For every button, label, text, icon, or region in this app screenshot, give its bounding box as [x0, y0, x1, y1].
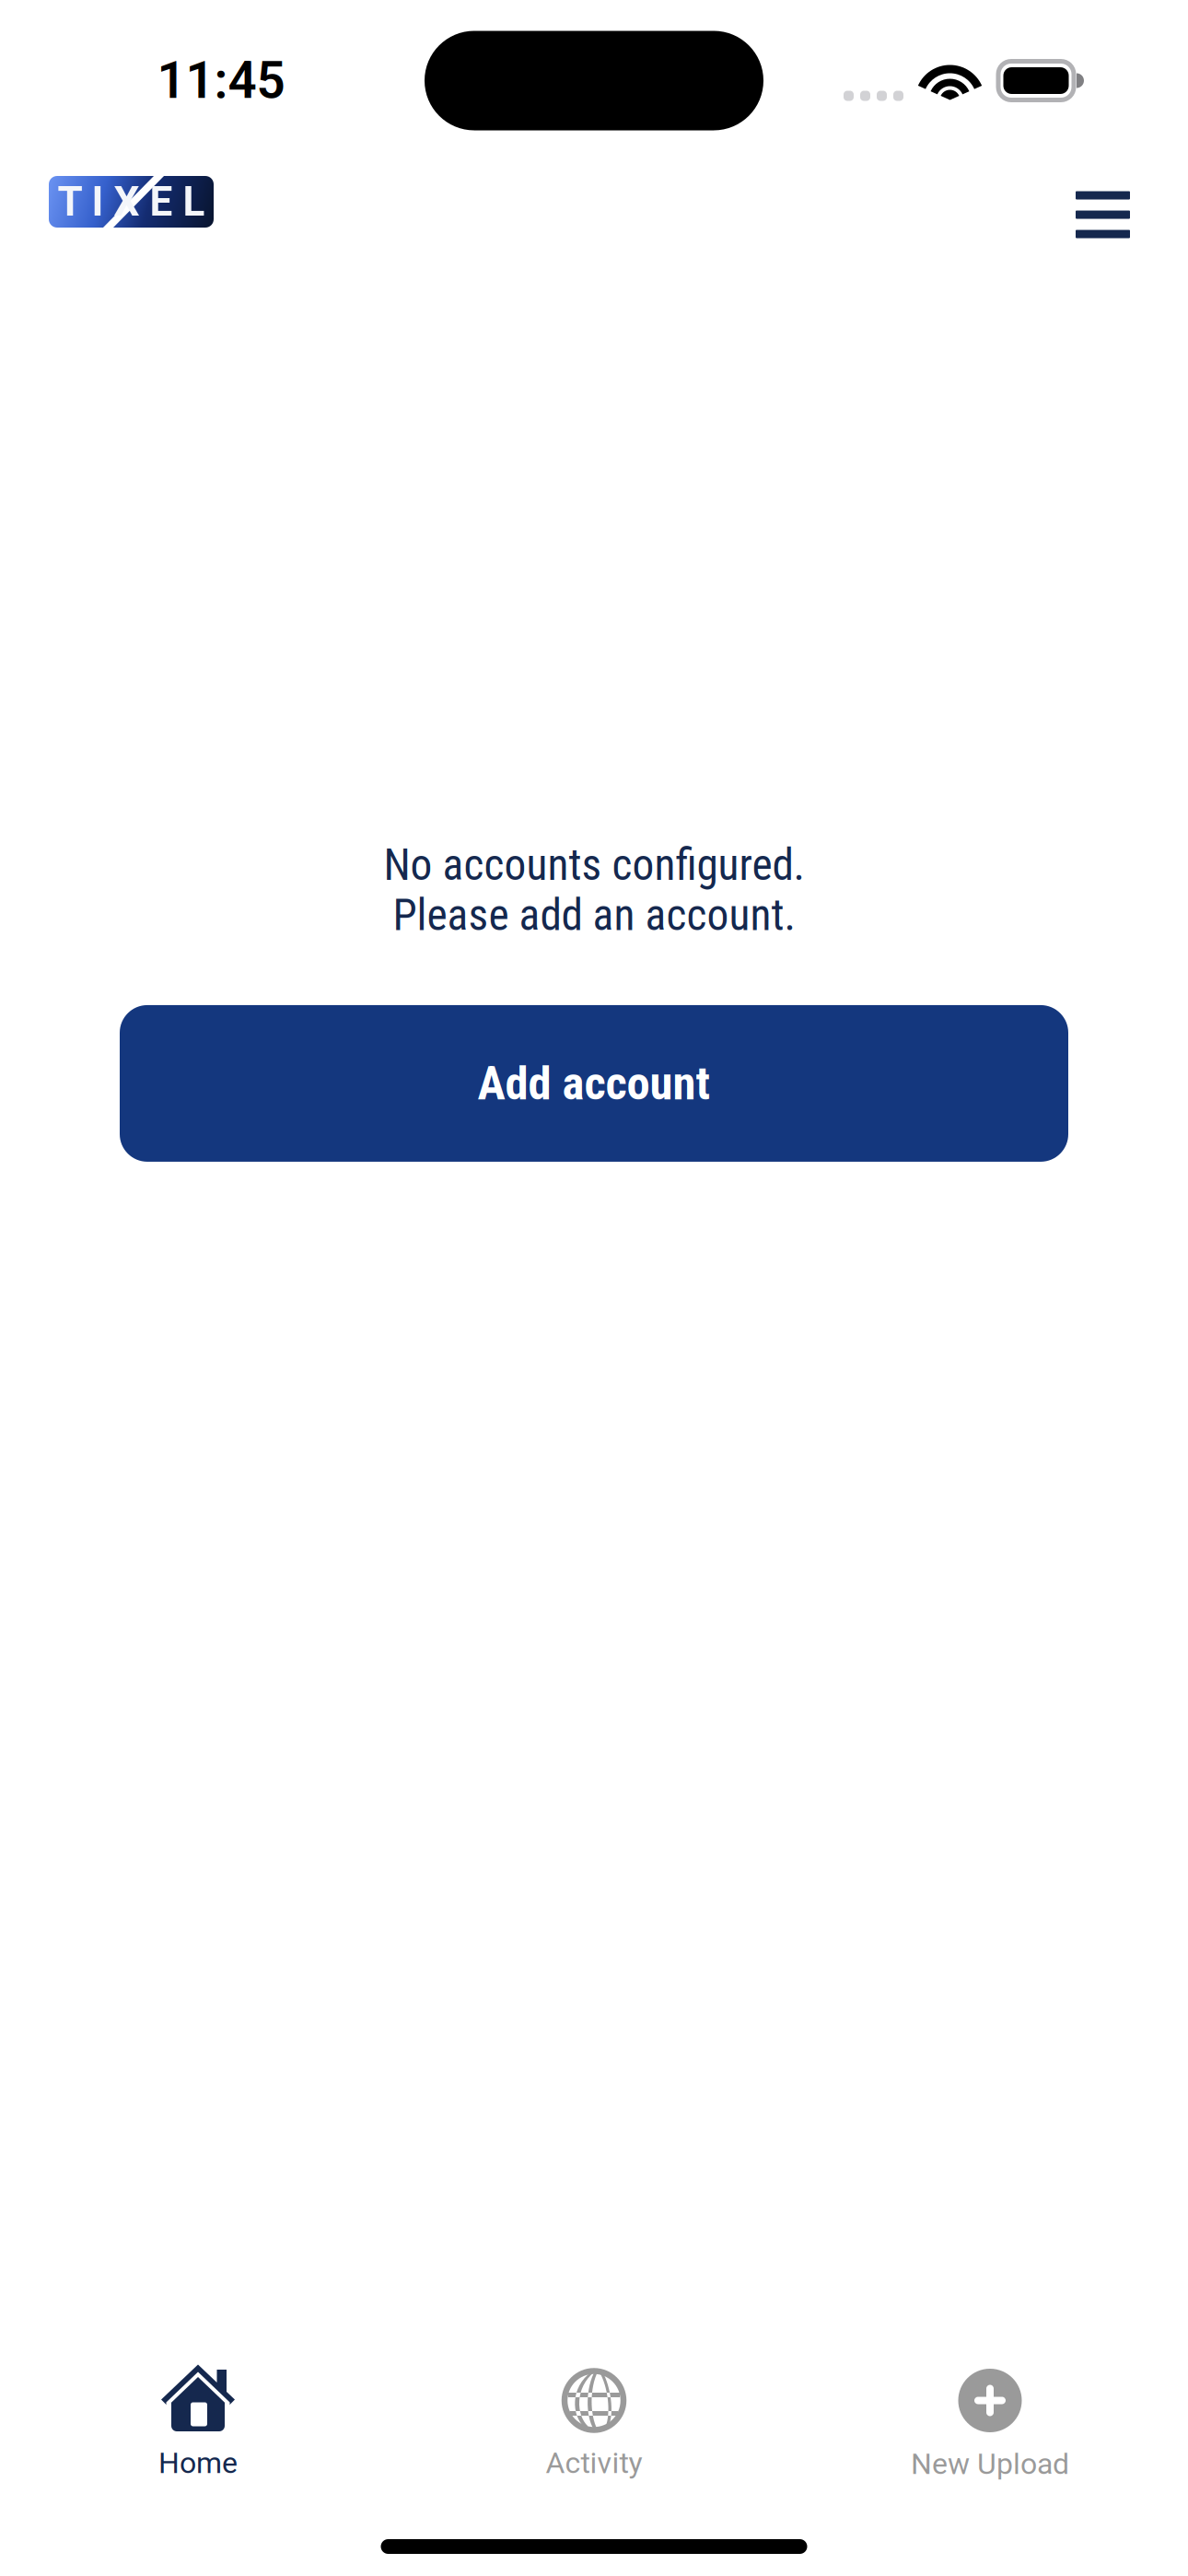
- staticText: 11:45: [157, 51, 285, 110]
- staticText: Add account: [478, 1056, 710, 1111]
- button[interactable]: Add account: [120, 1005, 1068, 1162]
- staticText: Activity: [546, 2446, 642, 2480]
- staticText: T I X E L: [58, 178, 205, 226]
- button[interactable]: T I X E L: [0, 161, 214, 242]
- staticText: New Upload: [911, 2447, 1069, 2481]
- button[interactable]: New Upload: [792, 2364, 1188, 2481]
- button[interactable]: Activity: [396, 2365, 792, 2480]
- button[interactable]: Menu: [1076, 147, 1188, 257]
- staticText: Please add an account.: [393, 890, 795, 941]
- staticText: Home: [158, 2446, 238, 2480]
- staticText: No accounts configured.: [384, 839, 804, 890]
- button[interactable]: Home: [0, 2365, 396, 2480]
